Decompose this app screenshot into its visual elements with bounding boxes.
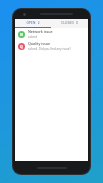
button[interactable]: N — [15, 28, 88, 40]
button[interactable]: Q — [15, 40, 88, 52]
button[interactable]: CLOSED 0 — [51, 19, 88, 28]
staticText: solved. Did you find any issue? — [28, 47, 71, 51]
button[interactable]: OPEN 2 — [15, 19, 51, 28]
staticText: Quality issue — [28, 41, 51, 46]
staticText: Q — [20, 44, 23, 49]
staticText: Network issue — [28, 29, 53, 34]
staticText: OPEN 2 — [15, 21, 51, 25]
staticText: CLOSED 0 — [51, 21, 88, 25]
staticText: solved — [28, 35, 38, 39]
staticText: N — [20, 32, 23, 37]
